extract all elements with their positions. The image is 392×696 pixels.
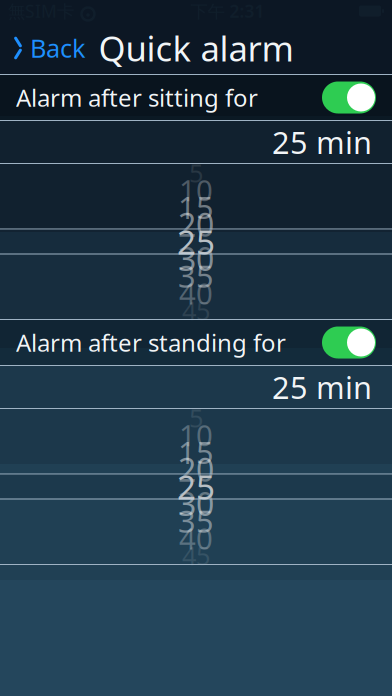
- staticText: 40: [179, 519, 213, 558]
- button[interactable]: Alarm after standing for: [0, 320, 392, 365]
- staticText: 25 min: [272, 122, 372, 162]
- staticText: 40: [179, 274, 213, 313]
- staticText: 25: [177, 464, 215, 509]
- staticText: 35: [178, 500, 214, 541]
- staticText: 10: [179, 170, 213, 209]
- staticText: Quick alarm: [98, 25, 293, 71]
- staticText: 15: [178, 187, 214, 227]
- staticText: 25: [177, 219, 215, 264]
- staticText: 20: [178, 203, 214, 246]
- staticText: Back: [30, 31, 86, 65]
- staticText: Alarm after sitting for: [16, 82, 258, 113]
- button[interactable]: Back: [0, 26, 98, 70]
- button[interactable]: 25 min: [0, 121, 392, 163]
- staticText: 30: [178, 237, 214, 280]
- staticText: 10: [179, 415, 213, 454]
- staticText: 45: [182, 293, 210, 327]
- staticText: 30: [178, 482, 214, 525]
- button[interactable]: Alarm after sitting for: [0, 75, 392, 120]
- staticText: 20: [178, 448, 214, 491]
- staticText: 5: [189, 401, 203, 434]
- staticText: 45: [182, 538, 210, 572]
- staticText: 5: [189, 156, 203, 189]
- staticText: Alarm after standing for: [16, 327, 286, 358]
- staticText: 15: [178, 432, 214, 472]
- staticText: 25 min: [272, 367, 372, 407]
- button[interactable]: 25 min: [0, 366, 392, 408]
- staticText: 35: [178, 255, 214, 296]
